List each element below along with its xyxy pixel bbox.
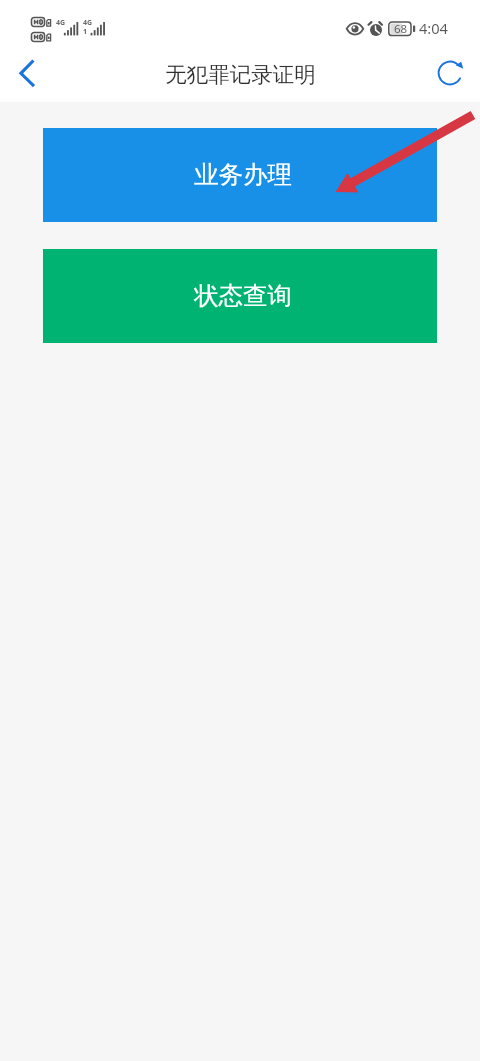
staticText: 无犯罪记录证明 [165, 61, 316, 88]
button[interactable]: 状态查询 [43, 249, 437, 343]
button[interactable]: 业务办理 [43, 128, 437, 222]
staticText: 4G [56, 18, 66, 28]
staticText: 状态查询 [194, 280, 292, 311]
staticText: 1 [83, 27, 88, 37]
staticText: 4:04 [419, 18, 448, 38]
staticText: 4G [83, 18, 93, 28]
staticText: 业务办理 [194, 159, 292, 190]
button[interactable]: Refresh [426, 48, 480, 102]
button[interactable]: Back [0, 48, 54, 102]
staticText: 68 [394, 21, 408, 37]
